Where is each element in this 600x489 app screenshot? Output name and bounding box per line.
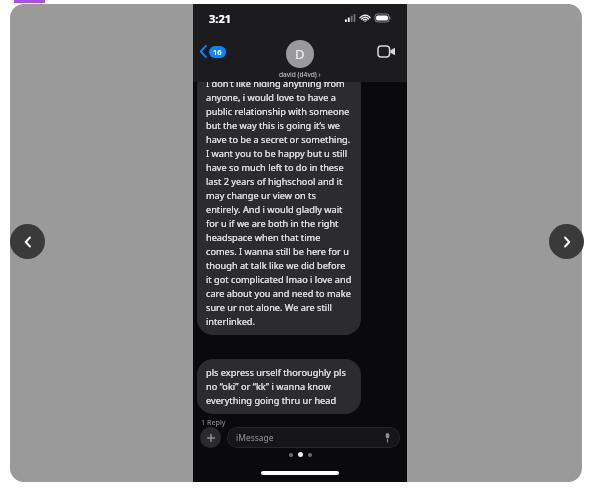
staticText: 1 Reply (201, 417, 226, 427)
staticText: 16 (213, 47, 222, 57)
staticText: david (d4vd) › (279, 70, 321, 79)
staticText: Jun 14, 2023 at 7:44 AM (261, 433, 340, 443)
staticText: iMessage (236, 432, 274, 444)
button[interactable]: I don't like hiding anything from anyone… (197, 70, 361, 335)
button[interactable]: 1 Reply (201, 417, 226, 427)
staticText: I don't like hiding anything from anyone… (206, 77, 352, 328)
staticText: 3:21 (209, 11, 231, 26)
button[interactable]: FaceTime (376, 41, 396, 61)
button[interactable]: Back (198, 41, 228, 62)
staticText: pls express urself thoroughly pls no “ok… (206, 366, 352, 407)
button[interactable]: Previous (10, 224, 45, 259)
button[interactable]: pls express urself thoroughly pls no “ok… (197, 359, 361, 414)
button[interactable]: Next (549, 224, 584, 259)
button[interactable]: Record audio (382, 432, 393, 443)
button[interactable]: D (279, 40, 321, 79)
staticText: D (295, 45, 305, 63)
button[interactable]: Add attachment (200, 427, 221, 448)
button[interactable]: iMessage (227, 427, 400, 448)
